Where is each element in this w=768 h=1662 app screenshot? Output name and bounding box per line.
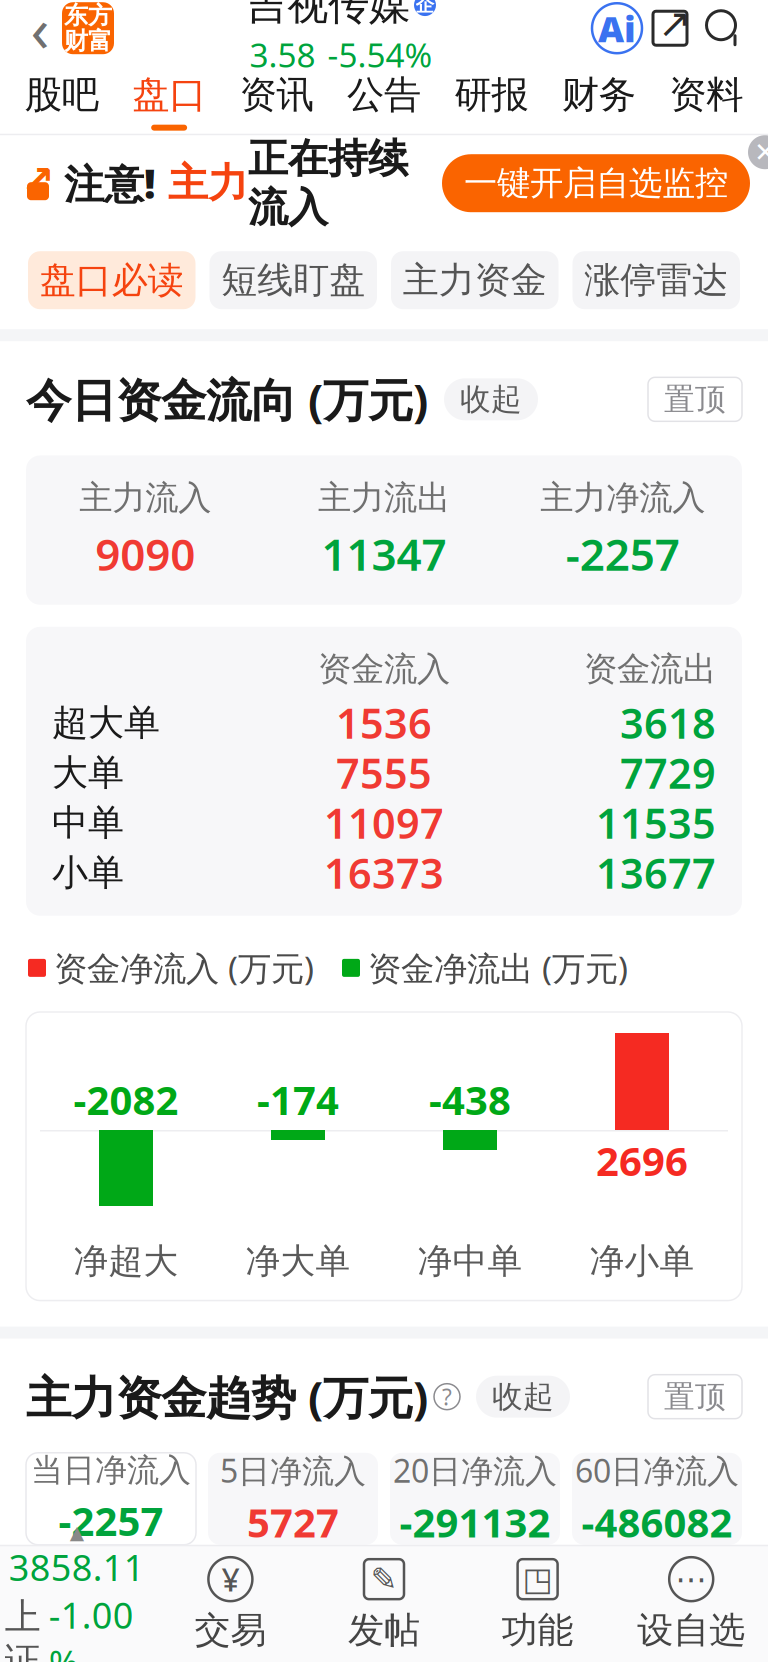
button[interactable]: Share <box>642 0 698 56</box>
staticText: 5日净流入 <box>220 1449 366 1491</box>
button[interactable]: 60日净流入 <box>572 1453 742 1545</box>
staticText: -486082 <box>581 1495 732 1549</box>
staticText: 盘口 <box>132 72 206 118</box>
staticText: 7555 <box>336 745 432 800</box>
staticText: 资金流出 <box>584 649 716 690</box>
staticText: 功能 <box>502 1608 574 1652</box>
staticText: -438 <box>429 1073 511 1126</box>
staticText: 收起 <box>460 380 522 418</box>
button[interactable]: 短线盯盘 <box>209 251 377 309</box>
button[interactable]: Search <box>698 2 750 54</box>
staticText: 净中单 <box>417 1240 522 1283</box>
button[interactable]: 收起 <box>476 1376 570 1418</box>
staticText: ‹ <box>30 0 49 69</box>
staticText: 大单 <box>52 751 124 795</box>
button[interactable]: 资料 <box>653 67 760 135</box>
button[interactable]: ⋯ <box>614 1556 768 1652</box>
staticText: 3.58 <box>249 32 315 77</box>
staticText: 资金净流入 (万元) <box>54 946 314 990</box>
button[interactable]: ◳ <box>461 1556 614 1652</box>
staticText: ◳ <box>523 1561 553 1597</box>
staticText: 3618 <box>620 695 716 750</box>
staticText: 设自选 <box>637 1608 745 1652</box>
button[interactable]: 涨停雷达 <box>572 251 740 309</box>
staticText: 正在持续流入 <box>248 134 408 232</box>
staticText: 置顶 <box>664 380 726 418</box>
button[interactable]: 研报 <box>438 67 545 135</box>
staticText: 财富 <box>64 26 112 56</box>
button[interactable]: 公告 <box>330 67 438 135</box>
staticText: 交易 <box>194 1608 266 1652</box>
button[interactable]: 股吧 <box>8 67 115 135</box>
staticText: 小单 <box>52 851 124 895</box>
button[interactable]: AI assistant <box>592 3 642 53</box>
staticText: -2082 <box>73 1073 178 1126</box>
staticText: 短线盯盘 <box>221 258 365 302</box>
staticText: ↗ <box>658 0 692 46</box>
button[interactable]: 置顶 <box>648 377 742 421</box>
button[interactable]: ✎ <box>307 1556 461 1652</box>
staticText: 收起 <box>492 1378 554 1415</box>
staticText: 置顶 <box>664 1378 726 1415</box>
staticText: 公告 <box>347 72 421 118</box>
button[interactable]: 盘口必读 <box>28 251 195 309</box>
staticText: 资讯 <box>240 72 314 118</box>
staticText: ? <box>442 1382 452 1412</box>
staticText: 11535 <box>596 795 716 850</box>
button[interactable]: 主力资金 <box>391 251 558 309</box>
staticText: 股吧 <box>25 72 99 118</box>
button[interactable]: ¥ <box>154 1556 307 1652</box>
staticText: 7729 <box>620 745 716 800</box>
staticText: 资金净流出 (万元) <box>368 946 628 990</box>
staticText: ⋯ <box>675 1561 707 1597</box>
staticText: 20日净流入 <box>393 1449 557 1491</box>
staticText: 超大单 <box>52 701 160 745</box>
staticText: 1536 <box>336 695 432 750</box>
staticText: 当日净流入 <box>31 1451 191 1490</box>
button[interactable]: 当日净流入 <box>26 1453 196 1545</box>
button[interactable]: Close banner <box>748 135 768 169</box>
staticText: 吉视传媒 <box>246 0 410 30</box>
staticText: 东方 <box>64 1 112 30</box>
button[interactable]: 盘口 <box>115 67 223 135</box>
button[interactable]: East Money home <box>62 2 114 54</box>
button[interactable]: 资讯 <box>223 67 330 135</box>
staticText: 中单 <box>52 801 124 845</box>
staticText: 主力流出 <box>318 477 450 518</box>
button[interactable]: Back <box>18 0 62 58</box>
button[interactable]: 收起 <box>444 378 538 420</box>
staticText: 11347 <box>321 524 446 583</box>
staticText: 财务 <box>562 72 636 118</box>
staticText: -5.54% <box>327 32 432 77</box>
staticText: -291132 <box>399 1495 550 1549</box>
staticText: 11097 <box>324 795 444 850</box>
staticText: 今日资金流向 (万元) <box>26 369 428 429</box>
button[interactable]: 20日净流入 <box>390 1453 560 1545</box>
button[interactable]: 5日净流入 <box>208 1453 378 1545</box>
button[interactable]: 财务 <box>545 67 652 135</box>
staticText: ↗ <box>21 157 55 203</box>
staticText: 9090 <box>95 524 195 583</box>
staticText: Ai <box>598 4 636 52</box>
staticText: -2257 <box>58 1494 163 1547</box>
button[interactable]: ▲ <box>0 1522 154 1662</box>
staticText: 2696 <box>596 1134 688 1187</box>
button[interactable]: 一键开启自选监控 <box>442 154 750 212</box>
staticText: 盘口必读 <box>40 258 184 302</box>
staticText: 3858.11 <box>9 1543 145 1591</box>
staticText: ¥ <box>221 1558 239 1600</box>
staticText: 净小单 <box>589 1240 694 1283</box>
staticText: 净大单 <box>245 1240 350 1283</box>
staticText: 净超大 <box>73 1240 178 1283</box>
button[interactable]: 置顶 <box>648 1375 742 1419</box>
staticText: -174 <box>257 1073 339 1126</box>
staticText: ✎ <box>370 1561 397 1597</box>
staticText: 5727 <box>247 1495 339 1549</box>
staticText: 涨停雷达 <box>584 258 728 302</box>
staticText: 资金流入 <box>318 649 450 690</box>
staticText: -2257 <box>566 524 680 583</box>
staticText: 主力流入 <box>79 477 211 518</box>
staticText: 发帖 <box>348 1608 420 1652</box>
staticText: -1.00% <box>49 1591 134 1662</box>
staticText: 上证 <box>5 1595 41 1662</box>
